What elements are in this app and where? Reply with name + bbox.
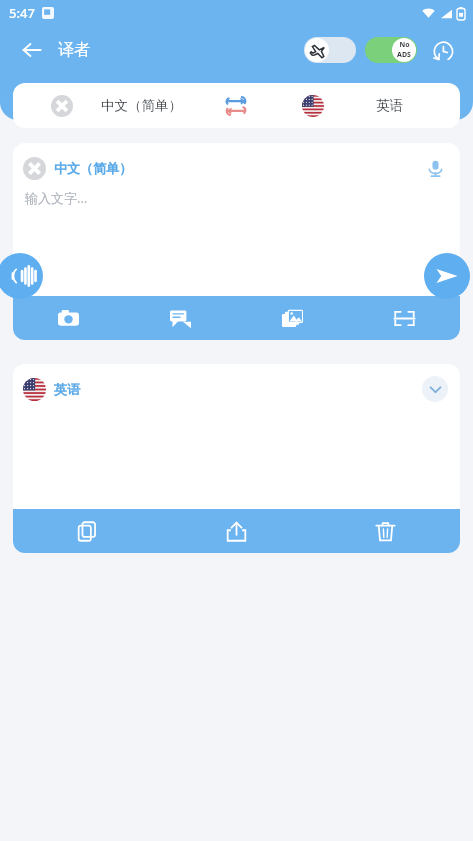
button[interactable]: Expand (422, 376, 448, 402)
button[interactable]: History (423, 31, 461, 69)
button[interactable]: Conversation (124, 296, 236, 340)
staticText: ADS (397, 50, 411, 60)
button[interactable]: 英语 (258, 83, 460, 128)
button[interactable]: Speak (0, 253, 43, 299)
button[interactable]: Camera (13, 296, 124, 340)
button[interactable]: Scan (348, 296, 460, 340)
staticText: No (399, 40, 410, 50)
staticText: 中文（简单） (54, 160, 132, 176)
button[interactable]: Translate (424, 253, 470, 299)
button[interactable]: 中文（简单） (13, 83, 214, 128)
button[interactable]: Copy (13, 509, 162, 553)
staticText: 中文（简单） (101, 97, 182, 114)
button[interactable]: Delete (311, 509, 460, 553)
button[interactable]: Airplane mode (304, 37, 356, 63)
button[interactable]: Voice input (422, 155, 448, 181)
staticText: 译者 (58, 40, 90, 60)
button[interactable]: No ads (365, 37, 417, 63)
button[interactable]: Gallery (236, 296, 348, 340)
button[interactable]: Back (12, 30, 52, 70)
staticText: 5:47 (9, 4, 35, 22)
button[interactable]: Swap languages (214, 84, 258, 128)
staticText: 英语 (54, 381, 80, 397)
button[interactable]: Share (162, 509, 311, 553)
staticText: 输入文字… (25, 189, 88, 207)
staticText: 英语 (376, 97, 403, 114)
